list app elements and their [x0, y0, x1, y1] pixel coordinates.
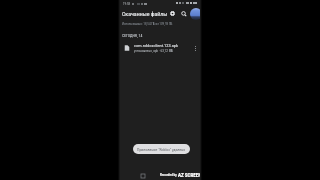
button[interactable]: com.robloxclient.123.apk — [118, 42, 202, 54]
button[interactable]: Recent apps — [140, 173, 145, 178]
staticText: com.robloxclient.123.apk — [134, 43, 179, 48]
button[interactable]: Приложение "Roblox" удалено — [133, 144, 190, 154]
staticText: Использовано: 18,54 ГБ из 109,93 ГБ — [122, 22, 173, 26]
staticText: Приложение "Roblox" удалено — [137, 147, 186, 152]
button[interactable]: Account — [190, 8, 202, 20]
button[interactable]: Settings — [168, 9, 177, 18]
button[interactable]: Search — [179, 9, 188, 18]
staticText: установлено, apk · 63,12 МБ — [134, 49, 174, 53]
staticText: Скачанные файлы — [122, 11, 168, 18]
staticText: AZ SCREEN — [178, 172, 202, 178]
staticText: Recorded by — [160, 173, 177, 177]
button[interactable]: More options — [191, 44, 199, 52]
staticText: СЕГОДНЯ, 14 — [122, 33, 143, 37]
staticText: 19:58 — [123, 2, 131, 6]
